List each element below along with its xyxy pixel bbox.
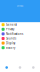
button[interactable]: Home — [0, 63, 13, 72]
button[interactable]: Tab — [13, 63, 27, 72]
button[interactable]: Tab — [27, 63, 40, 72]
staticText: Battery — [6, 46, 15, 49]
button[interactable]: Notifications — [0, 32, 40, 36]
button[interactable]: Privacy — [0, 27, 40, 32]
staticText: Privacy — [6, 27, 14, 31]
button[interactable]: Display — [0, 41, 40, 45]
staticText: Sounds — [6, 37, 16, 40]
staticText: Settings — [16, 5, 23, 7]
button[interactable]: General — [0, 22, 40, 27]
button[interactable]: Sounds — [0, 36, 40, 41]
button[interactable]: Battery — [0, 45, 40, 50]
staticText: General — [6, 23, 17, 26]
staticText: Display — [6, 41, 15, 45]
staticText: Notifications — [6, 32, 23, 36]
